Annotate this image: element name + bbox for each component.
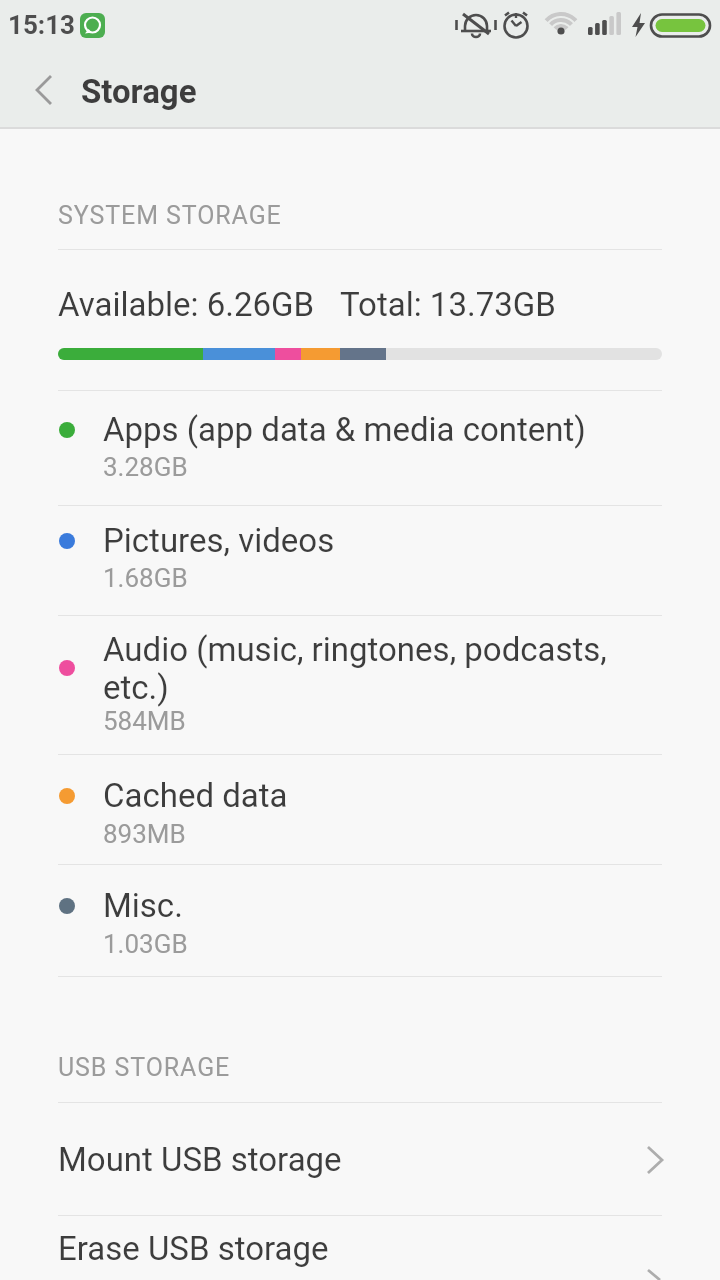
staticText: 584MB [103, 706, 186, 736]
button[interactable] [0, 391, 720, 505]
staticText: Cached data [103, 776, 288, 815]
staticText: Erase USB storage [58, 1229, 329, 1268]
button[interactable] [0, 506, 720, 615]
staticText: USB STORAGE [58, 1053, 231, 1082]
button[interactable] [0, 1103, 720, 1215]
staticText: 15:13 [8, 10, 76, 40]
staticText: 1.03GB [103, 929, 188, 959]
staticText: Available: 6.26GB [58, 285, 315, 324]
staticText: Apps (app data & media content) [103, 410, 586, 449]
staticText: 893MB [103, 819, 186, 849]
staticText: Audio (music, ringtones, podcasts, [103, 630, 607, 669]
button[interactable] [0, 616, 720, 754]
staticText: 3.28GB [103, 452, 188, 482]
staticText: Misc. [103, 886, 183, 925]
staticText: etc.) [103, 668, 169, 707]
staticText: Storage [81, 72, 197, 111]
staticText: Total: 13.73GB [340, 285, 556, 324]
staticText: 1.68GB [103, 563, 188, 593]
button[interactable] [0, 865, 720, 976]
button[interactable] [0, 1216, 720, 1280]
button[interactable] [20, 66, 68, 114]
staticText: SYSTEM STORAGE [58, 201, 282, 230]
staticText: Mount USB storage [58, 1140, 342, 1179]
staticText: Pictures, videos [103, 521, 335, 560]
button[interactable] [0, 755, 720, 864]
